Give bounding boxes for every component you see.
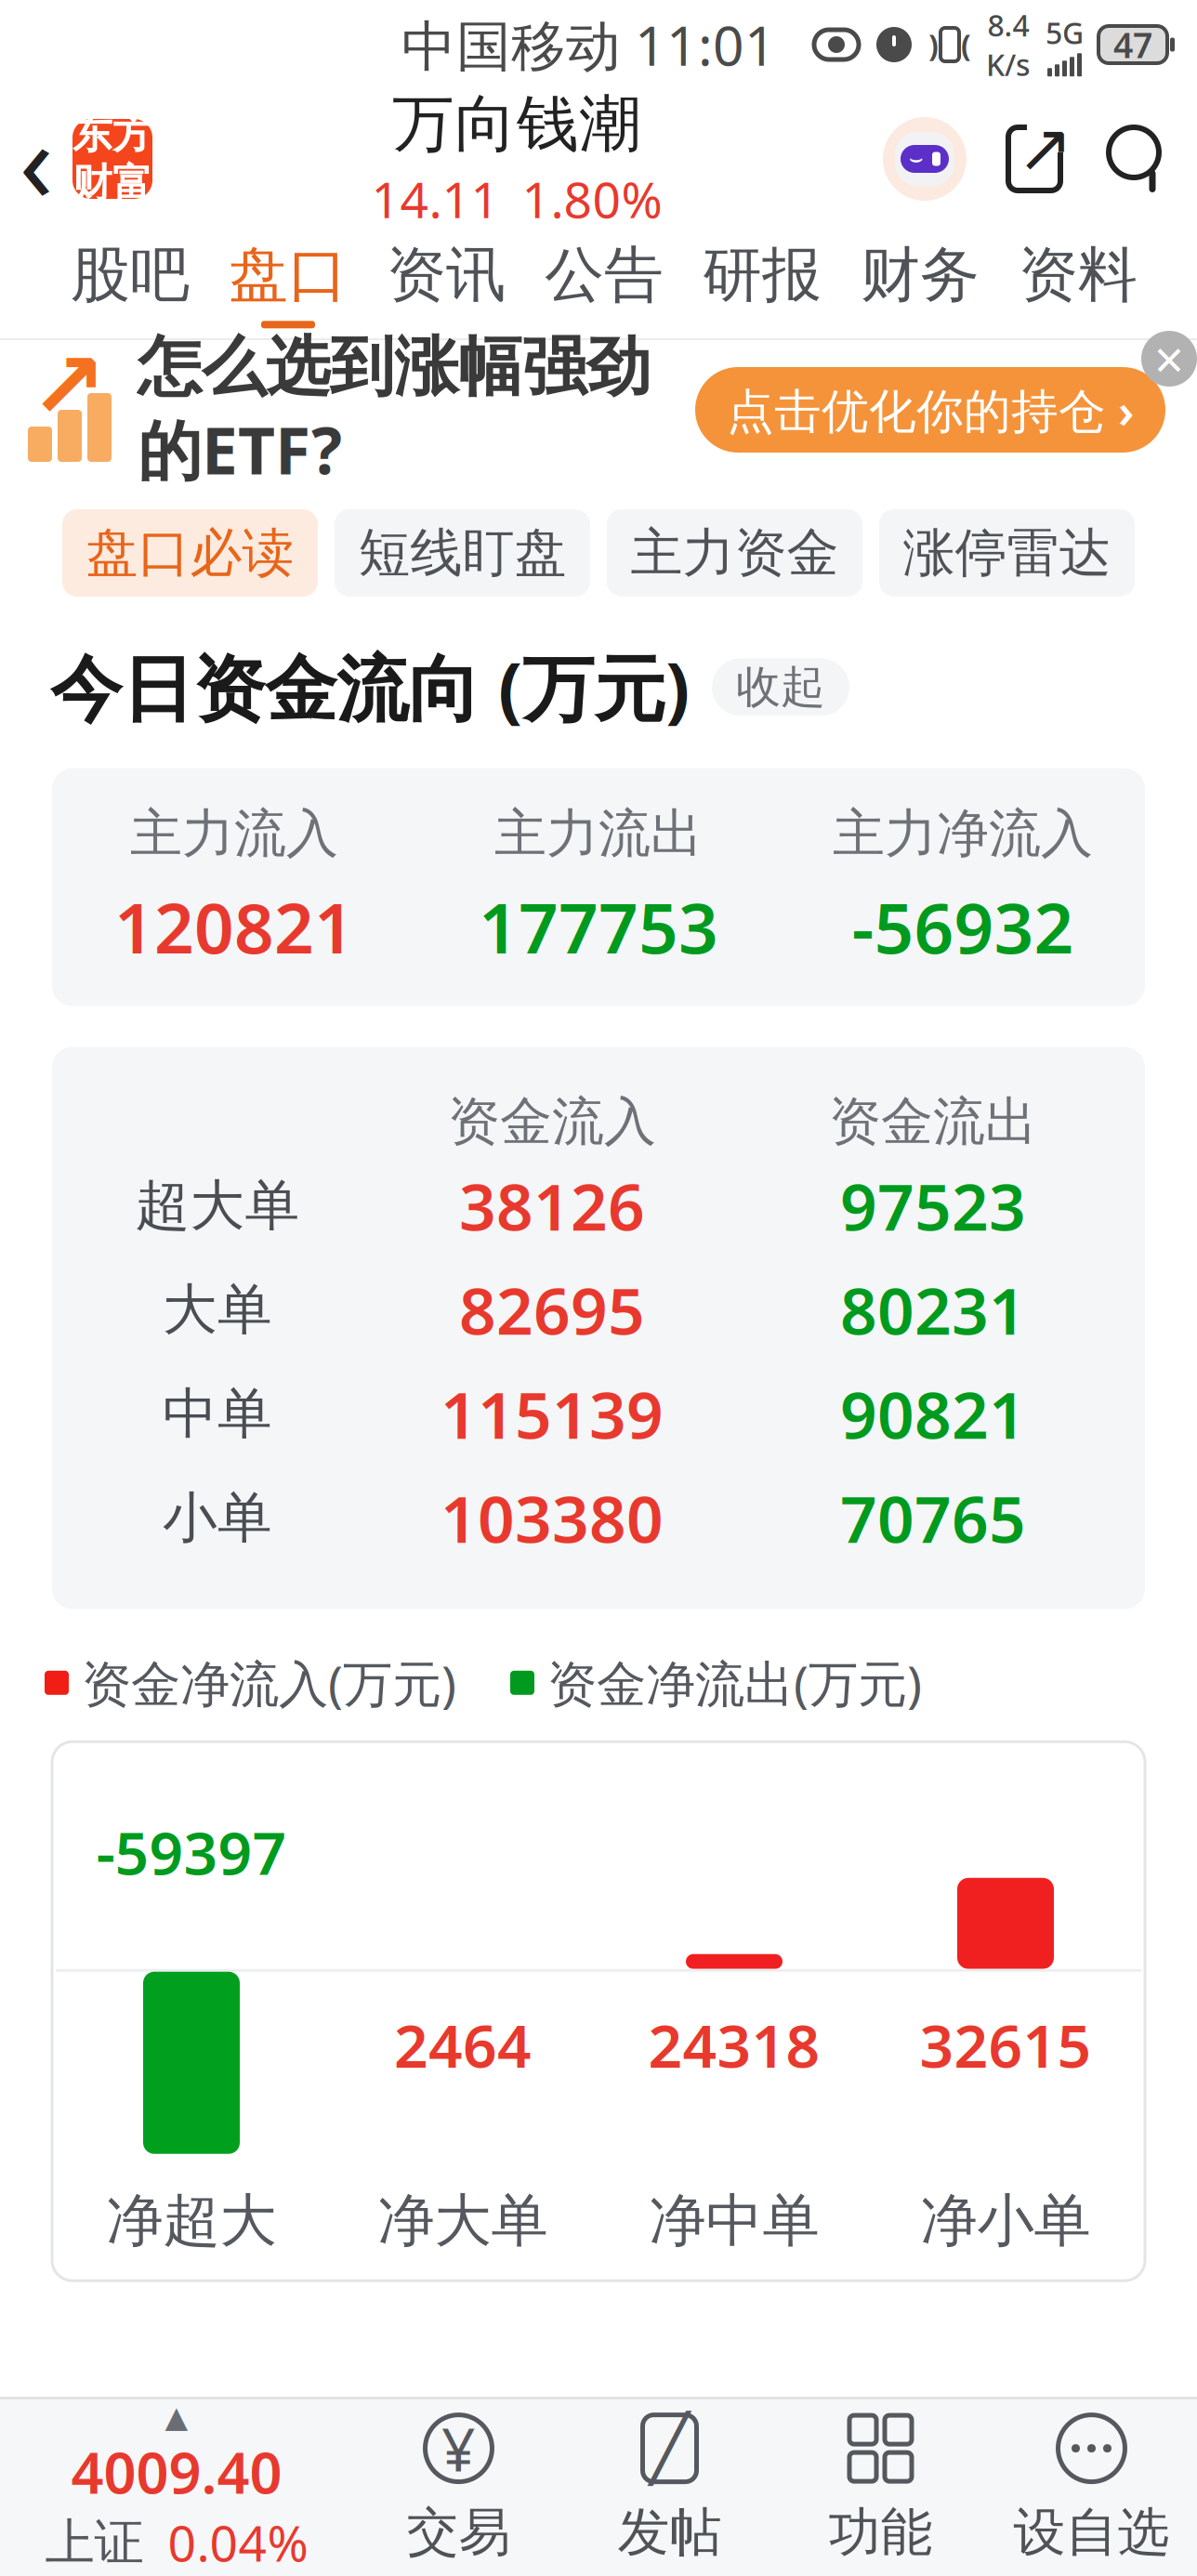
- staticText: 主力流出: [494, 802, 703, 866]
- staticText: 股吧: [71, 239, 190, 312]
- staticText: 怎么选到涨幅强劲的ETF?: [138, 327, 651, 492]
- staticText: 财务: [861, 239, 980, 312]
- staticText: ↗: [1017, 110, 1072, 186]
- staticText: 14.11: [371, 166, 500, 232]
- staticText: 115139: [441, 1371, 664, 1457]
- staticText: 资金流出: [829, 1090, 1037, 1154]
- staticText: ╱: [650, 2412, 689, 2485]
- staticText: 中国移动 11:01: [401, 8, 776, 81]
- staticText: ): [928, 25, 939, 64]
- staticText: K/s: [986, 45, 1031, 84]
- staticText: 0.04%: [168, 2510, 308, 2575]
- button[interactable]: 怎么选到涨幅强劲的ETF: [0, 340, 1197, 480]
- staticText: 177753: [479, 881, 718, 973]
- button[interactable]: 涨停雷达: [879, 509, 1135, 597]
- button[interactable]: ¥: [353, 2399, 564, 2576]
- staticText: ‹: [19, 85, 53, 233]
- button[interactable]: 资讯: [367, 229, 525, 338]
- staticText: 东方: [72, 110, 152, 159]
- staticText: 1.80%: [522, 166, 662, 232]
- staticText: 90821: [840, 1371, 1026, 1457]
- button[interactable]: 短线盯盘: [335, 509, 590, 597]
- staticText: 82695: [459, 1267, 645, 1353]
- staticText: 净小单: [921, 2186, 1091, 2256]
- staticText: 80231: [840, 1267, 1026, 1353]
- button[interactable]: 主力资金: [607, 509, 862, 597]
- staticText: 8.4: [987, 5, 1029, 45]
- staticText: 38126: [459, 1163, 645, 1249]
- button[interactable]: 财务: [841, 229, 999, 338]
- staticText: 小单: [163, 1484, 272, 1551]
- staticText: ×: [1154, 324, 1184, 393]
- staticText: -59397: [96, 1812, 287, 1891]
- staticText: ¥: [441, 2409, 476, 2488]
- staticText: 上证: [45, 2512, 144, 2573]
- button[interactable]: 资料: [999, 229, 1157, 338]
- staticText: 资金流入: [448, 1090, 656, 1154]
- staticText: 中单: [163, 1380, 272, 1447]
- staticText: 交易: [407, 2500, 511, 2564]
- button[interactable]: ╱: [564, 2399, 775, 2576]
- staticText: 4009.40: [71, 2434, 282, 2509]
- staticText: 财富: [72, 159, 152, 208]
- staticText: 资料: [1019, 239, 1138, 312]
- staticText: 103380: [441, 1475, 664, 1561]
- button[interactable]: 设自选: [986, 2399, 1197, 2576]
- button[interactable]: 收起: [712, 658, 849, 716]
- button[interactable]: 股吧: [51, 229, 209, 338]
- staticText: 净中单: [649, 2186, 819, 2256]
- staticText: 70765: [840, 1475, 1026, 1561]
- staticText: 收起: [736, 660, 825, 715]
- staticText: 资金净流入(万元): [82, 1650, 456, 1716]
- button[interactable]: AI assistant: [881, 115, 968, 203]
- staticText: (: [961, 25, 971, 64]
- staticText: 120821: [114, 881, 354, 973]
- button[interactable]: 东方财富 home: [72, 119, 152, 199]
- button[interactable]: 公告: [525, 229, 683, 338]
- staticText: ▲: [165, 2400, 188, 2434]
- button[interactable]: 研报: [683, 229, 841, 338]
- staticText: 净大单: [378, 2186, 548, 2256]
- staticText: 大单: [163, 1276, 272, 1343]
- staticText: 超大单: [135, 1172, 300, 1239]
- button[interactable]: 盘口必读: [62, 509, 318, 597]
- staticText: 发帖: [618, 2500, 722, 2564]
- staticText: 24318: [648, 2005, 820, 2084]
- staticText: 主力流入: [130, 802, 338, 866]
- staticText: -56932: [852, 881, 1074, 973]
- staticText: 主力净流入: [833, 802, 1093, 866]
- staticText: 5G: [1046, 13, 1084, 52]
- staticText: 设自选: [1013, 2500, 1170, 2564]
- button[interactable]: 上证 4009.40 0.04%: [0, 2399, 353, 2576]
- staticText: 97523: [840, 1163, 1026, 1249]
- staticText: 短线盯盘: [358, 521, 566, 585]
- staticText: 资金净流出(万元): [547, 1650, 922, 1716]
- staticText: 点击优化你的持仓 ›: [727, 379, 1134, 441]
- staticText: 净超大: [106, 2186, 276, 2256]
- staticText: 研报: [703, 239, 822, 312]
- button[interactable]: Search: [1100, 123, 1167, 195]
- staticText: 2464: [394, 2005, 532, 2084]
- staticText: 32615: [920, 2005, 1092, 2084]
- staticText: 公告: [545, 239, 664, 312]
- button[interactable]: 功能: [775, 2399, 986, 2576]
- staticText: ⌣: [909, 148, 924, 170]
- staticText: 盘口必读: [86, 521, 294, 585]
- button[interactable]: Back: [0, 99, 72, 219]
- staticText: 今日资金流向 (万元): [50, 639, 690, 735]
- staticText: ↗: [30, 334, 107, 438]
- button[interactable]: Share: [1000, 123, 1069, 195]
- button[interactable]: Close advertisement: [1141, 331, 1197, 387]
- staticText: 盘口: [229, 239, 348, 312]
- staticText: 功能: [829, 2500, 933, 2564]
- staticText: 资讯: [387, 239, 506, 312]
- button[interactable]: 盘口: [209, 229, 367, 338]
- staticText: 万向钱潮: [392, 86, 641, 162]
- staticText: 主力资金: [631, 521, 839, 585]
- staticText: 涨停雷达: [903, 521, 1111, 585]
- staticText: 47: [1113, 22, 1152, 68]
